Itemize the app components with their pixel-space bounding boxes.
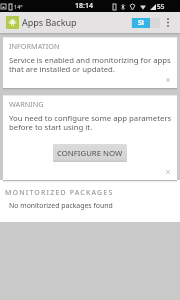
staticText: No monitorized packages found xyxy=(9,201,113,210)
staticText: Service is enabled and monitorizing for … xyxy=(9,55,171,75)
button[interactable]: INFORMATION xyxy=(3,38,177,88)
staticText: CONFIGURE NOW xyxy=(57,148,123,159)
staticText: 14° xyxy=(14,3,23,10)
staticText: INFORMATION xyxy=(9,41,60,51)
staticText: Sì xyxy=(138,18,144,28)
staticText: 18:14 xyxy=(75,1,93,11)
button[interactable]: Service enabled xyxy=(131,12,160,32)
button[interactable]: More options xyxy=(163,14,172,30)
button[interactable]: Dismiss xyxy=(163,167,172,176)
button[interactable]: Dismiss xyxy=(163,75,172,84)
staticText: MONITORIZED PACKAGES xyxy=(5,188,114,198)
button[interactable]: WARNING xyxy=(3,96,177,180)
staticText: WARNING xyxy=(9,99,44,109)
staticText: 55 xyxy=(157,2,165,11)
staticText: You need to configure some app parameter… xyxy=(9,113,172,133)
button[interactable]: CONFIGURE NOW xyxy=(53,144,127,162)
staticText: Apps Backup xyxy=(22,16,77,28)
